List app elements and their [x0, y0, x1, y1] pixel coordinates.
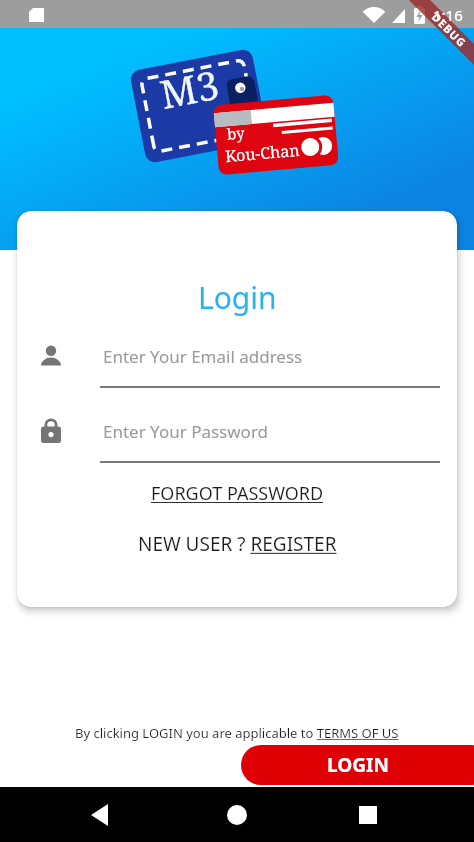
staticText: 1:16: [433, 5, 463, 25]
staticText: LOGIN: [327, 752, 389, 778]
staticText: by: [226, 122, 246, 144]
staticText: DEBUG: [429, 9, 470, 50]
button[interactable]: Enter Your Password: [100, 411, 440, 451]
staticText: NEW USER ? REGISTER: [138, 531, 337, 557]
button[interactable]: NEW USER ? REGISTER: [138, 531, 337, 557]
staticText: M3: [155, 57, 223, 120]
button[interactable]: LOGIN: [241, 745, 474, 785]
button[interactable]: Enter Your Email address: [100, 336, 440, 376]
button[interactable]: [84, 799, 116, 831]
staticText: Login: [198, 277, 277, 318]
button[interactable]: By clicking LOGIN you are applicable to …: [75, 724, 399, 742]
button[interactable]: FORGOT PASSWORD: [151, 481, 324, 506]
staticText: Enter Your Password: [103, 420, 269, 443]
staticText: FORGOT PASSWORD: [151, 481, 324, 506]
staticText: Enter Your Email address: [103, 345, 303, 368]
staticText: Kou-Chan: [224, 139, 301, 167]
staticText: By clicking LOGIN you are applicable to …: [75, 724, 399, 742]
button[interactable]: [352, 799, 384, 831]
button[interactable]: [221, 799, 253, 831]
